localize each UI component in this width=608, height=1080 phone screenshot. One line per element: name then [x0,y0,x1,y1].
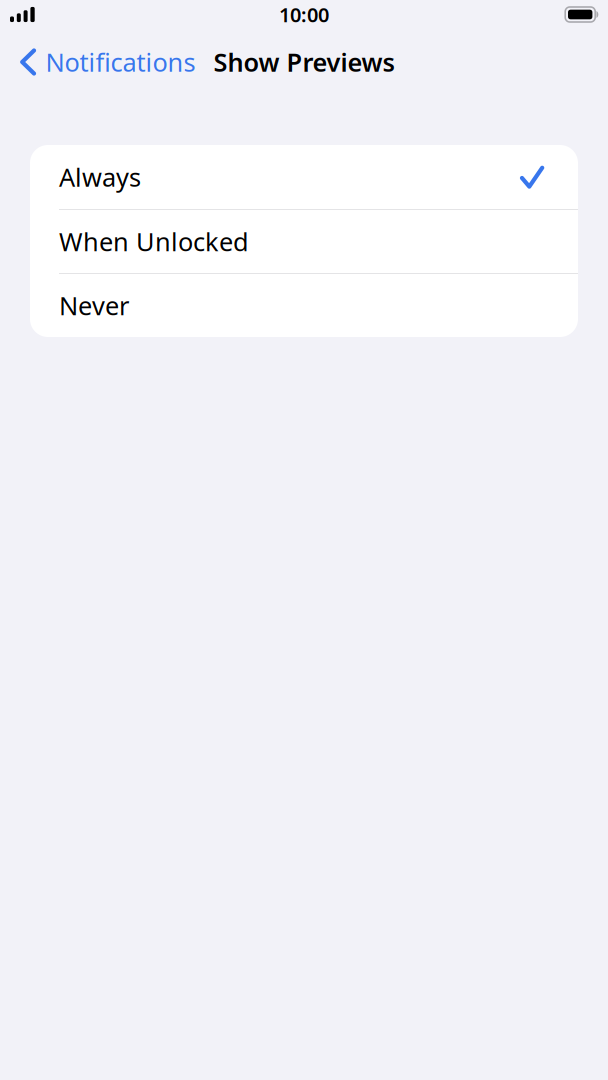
staticText: When Unlocked [59,225,249,258]
button[interactable]: Always [30,145,578,209]
staticText: Never [59,289,129,322]
button[interactable]: Never [30,274,578,337]
button[interactable]: Notifications [0,45,195,79]
staticText: Always [59,160,141,194]
staticText: Show Previews [213,45,394,79]
staticText: 10:00 [279,1,329,28]
button[interactable]: When Unlocked [30,210,578,273]
staticText: Notifications [45,45,195,79]
